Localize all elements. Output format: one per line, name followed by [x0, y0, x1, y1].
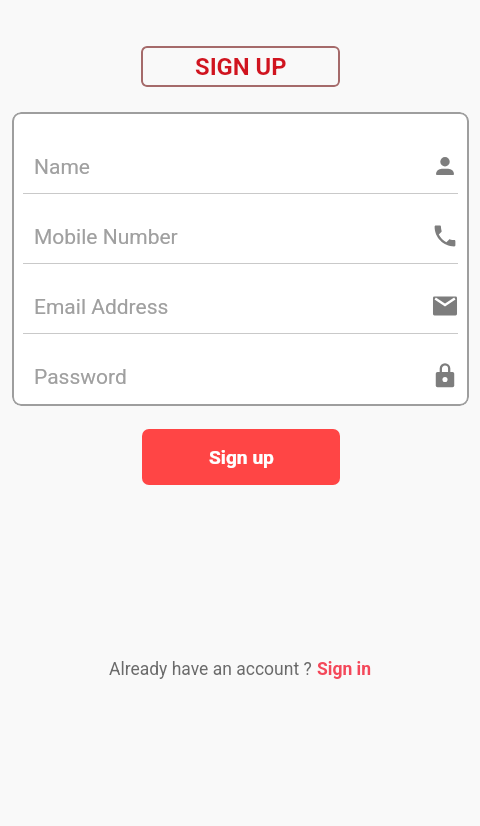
button[interactable]: Email Address: [12, 264, 469, 334]
button[interactable]: Sign in: [317, 659, 372, 680]
staticText: Email Address: [34, 295, 169, 320]
staticText: Already have an account ?: [109, 659, 317, 680]
staticText: Sign in: [317, 659, 372, 680]
staticText: SIGN UP: [195, 53, 287, 81]
staticText: Password: [34, 365, 127, 390]
button[interactable]: Mobile Number: [12, 194, 469, 264]
button[interactable]: Name: [12, 124, 469, 194]
staticText: Mobile Number: [34, 225, 178, 250]
button[interactable]: Password: [12, 334, 469, 404]
button[interactable]: SIGN UP: [141, 46, 340, 87]
button[interactable]: Sign up: [142, 429, 340, 485]
staticText: Name: [34, 155, 90, 180]
staticText: Sign up: [209, 446, 274, 469]
